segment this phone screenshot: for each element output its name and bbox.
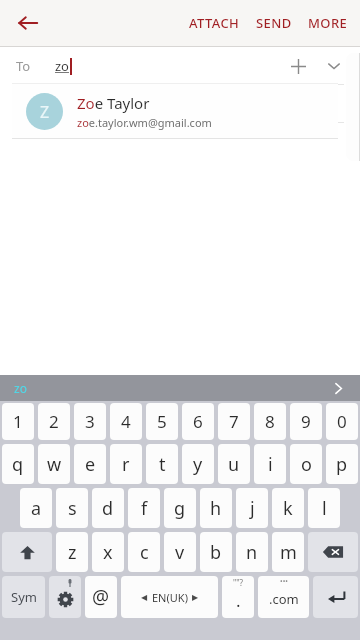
button[interactable]: Symbols [2, 576, 45, 618]
button[interactable]: x [92, 532, 124, 572]
button[interactable]: m [272, 532, 304, 572]
staticText: y [193, 452, 203, 477]
button[interactable]: t [146, 444, 178, 484]
staticText: 7 [229, 410, 239, 433]
button[interactable]: 1 [2, 403, 34, 440]
button[interactable]: 2 [38, 403, 70, 440]
button[interactable]: Language EN UK [121, 576, 218, 618]
staticText: z [68, 540, 77, 565]
staticText: .com [269, 590, 299, 608]
button[interactable]: At sign [85, 576, 117, 618]
staticText: @ [92, 584, 110, 610]
staticText: o [301, 452, 312, 477]
staticText: 0 [337, 410, 347, 433]
button[interactable]: p [326, 444, 358, 484]
staticText: zo [14, 380, 27, 396]
staticText: b [210, 540, 222, 565]
button[interactable]: zo [0, 375, 360, 401]
staticText: 5 [157, 410, 167, 433]
staticText: a [31, 496, 42, 521]
staticText: 3 [85, 410, 95, 433]
button[interactable]: j [236, 488, 268, 528]
button[interactable]: 7 [218, 403, 250, 440]
staticText: 1 [13, 410, 23, 433]
staticText: MORE [308, 14, 348, 32]
staticText: SEND [256, 14, 292, 32]
button[interactable]: v [164, 532, 196, 572]
button[interactable]: k [272, 488, 304, 528]
staticText: Z [40, 101, 50, 123]
button[interactable]: Navigate up [6, 1, 50, 45]
staticText: Sym [11, 588, 37, 606]
button[interactable]: r [110, 444, 142, 484]
button[interactable]: Period [222, 576, 254, 618]
button[interactable]: SEND [254, 8, 294, 38]
button[interactable]: 8 [254, 403, 286, 440]
button[interactable]: 0 [326, 403, 358, 440]
staticText: v [175, 540, 185, 565]
button[interactable]: Shift [2, 532, 52, 572]
button[interactable]: 5 [146, 403, 178, 440]
staticText: d [102, 496, 114, 521]
staticText: u [228, 452, 240, 477]
button[interactable]: Backspace [308, 532, 358, 572]
button[interactable]: Dot com [258, 576, 309, 618]
staticText: p [336, 452, 348, 477]
button[interactable]: More suggestions [328, 378, 348, 398]
button[interactable]: ATTACH [187, 8, 242, 38]
button[interactable]: u [218, 444, 250, 484]
button[interactable]: n [236, 532, 268, 572]
staticText: Zoe Taylor [77, 93, 150, 113]
staticText: h [210, 496, 222, 521]
button[interactable]: y [182, 444, 214, 484]
staticText: Subject [16, 95, 61, 113]
staticText: q [12, 452, 24, 477]
button[interactable]: Enter [313, 576, 358, 618]
button[interactable]: d [92, 488, 124, 528]
staticText: To [16, 57, 31, 75]
button[interactable]: h [200, 488, 232, 528]
button[interactable]: c [128, 532, 160, 572]
staticText: ""? [233, 577, 243, 588]
button[interactable]: a [20, 488, 52, 528]
staticText: 9 [301, 410, 311, 433]
button[interactable]: Z [12, 83, 338, 139]
button[interactable]: l [308, 488, 340, 528]
button[interactable]: 9 [290, 403, 322, 440]
staticText: w [47, 452, 62, 477]
button[interactable]: q [2, 444, 34, 484]
staticText: EN(UK) [152, 590, 188, 605]
button[interactable]: Add recipient [280, 48, 316, 84]
staticText: f [141, 496, 148, 521]
button[interactable]: 6 [182, 403, 214, 440]
staticText: c [140, 540, 149, 565]
button[interactable]: 3 [74, 403, 106, 440]
button[interactable]: s [56, 488, 88, 528]
staticText: g [174, 496, 186, 521]
staticText: r [122, 452, 130, 477]
staticText: j [250, 496, 255, 521]
staticText: 2 [49, 410, 59, 433]
staticText: i [268, 452, 273, 477]
staticText: ••• [280, 577, 288, 587]
staticText: n [246, 540, 258, 565]
staticText: m [280, 540, 297, 565]
button[interactable]: e [74, 444, 106, 484]
staticText: 6 [193, 410, 203, 433]
staticText: e [85, 452, 96, 477]
button[interactable]: MORE [306, 8, 350, 38]
button[interactable]: w [38, 444, 70, 484]
button[interactable]: g [164, 488, 196, 528]
staticText: zoe.taylor.wm@gmail.com [77, 115, 212, 130]
button[interactable]: o [290, 444, 322, 484]
button[interactable]: Keyboard settings [49, 576, 81, 618]
button[interactable]: z [56, 532, 88, 572]
staticText: ATTACH [189, 14, 240, 32]
button[interactable]: f [128, 488, 160, 528]
button[interactable]: Expand recipients [316, 48, 352, 84]
button[interactable]: 4 [110, 403, 142, 440]
button[interactable]: b [200, 532, 232, 572]
button[interactable]: i [254, 444, 286, 484]
staticText: x [103, 540, 113, 565]
staticText: s [68, 496, 77, 521]
